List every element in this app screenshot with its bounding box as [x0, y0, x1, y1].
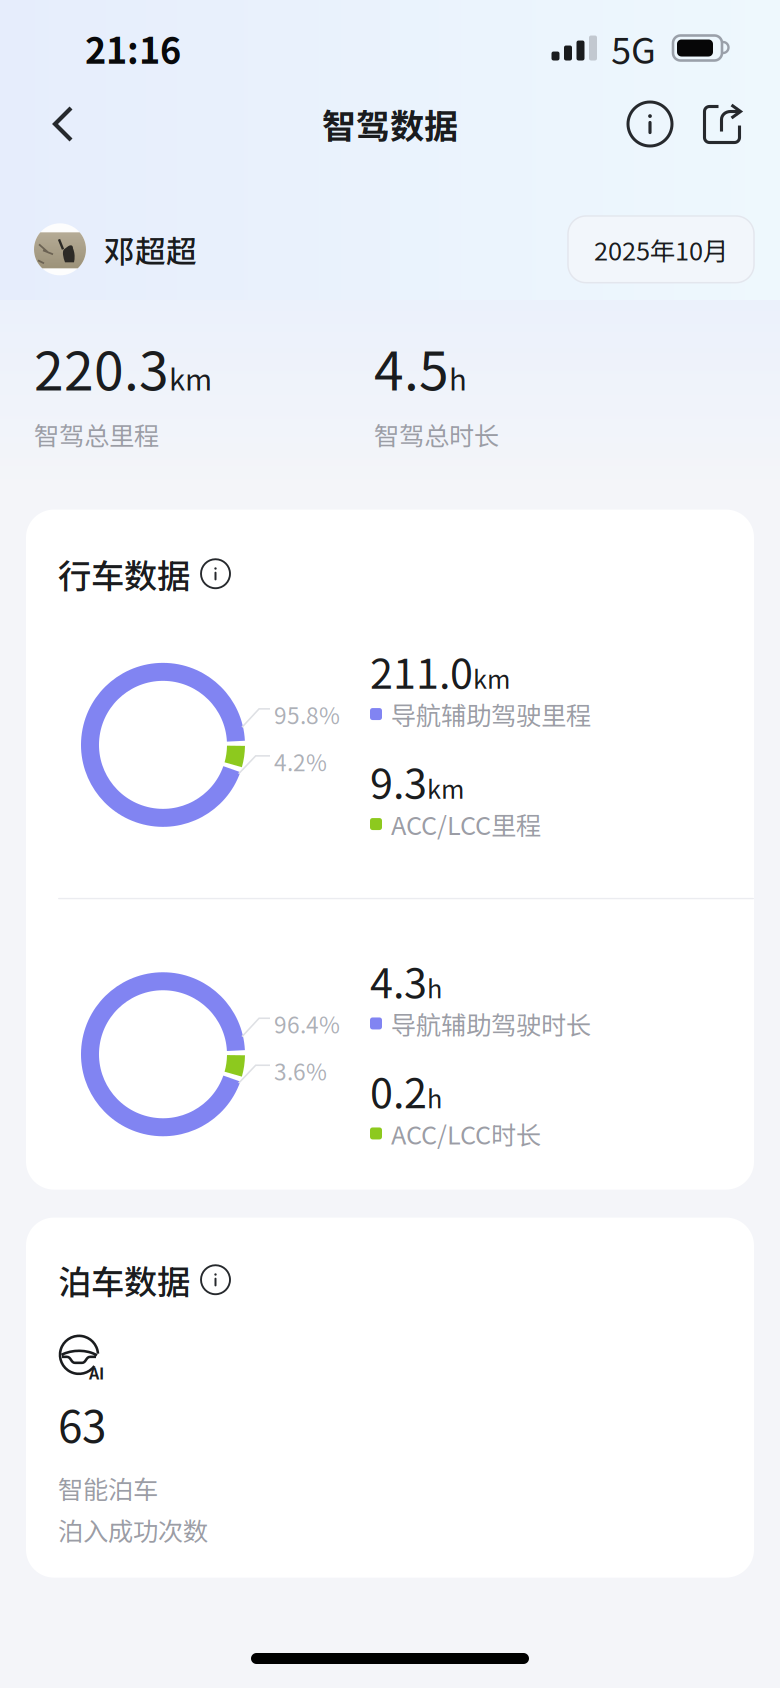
staticText: 智能泊车 [58, 1470, 158, 1506]
staticText: 0.2 [370, 1060, 427, 1120]
staticText: ACC/LCC里程 [391, 806, 541, 842]
staticText: 96.4% [274, 1007, 340, 1040]
staticText: h [427, 1079, 442, 1115]
staticText: 泊车数据 [58, 1256, 190, 1304]
staticText: 211.0 [370, 641, 473, 701]
staticText: h [449, 356, 467, 399]
staticText: 63 [58, 1392, 106, 1456]
staticText: 导航辅助驾驶里程 [391, 696, 591, 732]
staticText: 220.3 [34, 329, 169, 406]
staticText: 9.3 [370, 751, 427, 811]
staticText: 邓超超 [104, 227, 197, 271]
staticText: 95.8% [274, 698, 340, 731]
staticText: 行车数据 [58, 550, 190, 598]
staticText: 导航辅助驾驶时长 [391, 1005, 591, 1042]
button[interactable]: Information [614, 86, 686, 162]
staticText: 4.2% [274, 745, 327, 778]
staticText: 21:16 [85, 22, 181, 74]
staticText: km [427, 769, 464, 806]
button[interactable]: 邓超超 [34, 223, 197, 275]
staticText: 2025年10月 [594, 231, 728, 268]
staticText: AI [89, 1361, 104, 1384]
staticText: 4.3 [370, 950, 427, 1010]
staticText: 智驾总时长 [374, 416, 499, 453]
staticText: km [473, 659, 510, 696]
button[interactable]: Back [27, 86, 99, 162]
staticText: h [427, 969, 442, 1005]
staticText: 5G [611, 22, 656, 74]
button[interactable]: 2025年10月 [568, 216, 754, 283]
button[interactable]: Share [686, 86, 758, 162]
staticText: 4.5 [374, 329, 449, 406]
staticText: 智驾数据 [322, 99, 458, 149]
staticText: ACC/LCC时长 [391, 1115, 541, 1152]
staticText: km [169, 356, 212, 399]
staticText: 泊入成功次数 [58, 1511, 208, 1548]
staticText: 3.6% [274, 1054, 327, 1087]
staticText: 智驾总里程 [34, 416, 159, 453]
